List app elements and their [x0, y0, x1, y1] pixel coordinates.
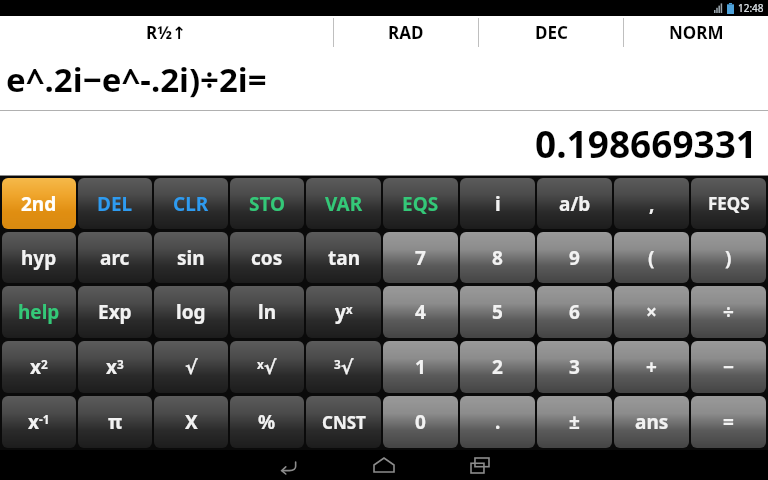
staticText: ln — [258, 299, 277, 325]
button[interactable]: 3 — [537, 341, 612, 393]
staticText: DEL — [97, 191, 133, 217]
button[interactable]: i — [460, 178, 535, 229]
staticText: tan — [328, 245, 360, 271]
staticText: . — [495, 409, 501, 435]
button[interactable]: . — [460, 396, 535, 448]
staticText: % — [258, 409, 276, 435]
button[interactable]: + — [614, 341, 689, 393]
button[interactable]: VAR — [306, 178, 381, 229]
button[interactable]: Home — [367, 450, 401, 480]
button[interactable]: ÷ — [691, 286, 766, 338]
button[interactable]: , — [614, 178, 689, 229]
button[interactable]: FEQS — [691, 178, 766, 229]
staticText: ± — [569, 409, 580, 435]
button[interactable]: log — [154, 286, 228, 338]
staticText: DEC — [535, 21, 568, 44]
button[interactable]: DEC — [479, 16, 623, 49]
button[interactable]: 4 — [383, 286, 458, 338]
button[interactable]: sin — [154, 232, 228, 283]
staticText: ÷ — [723, 299, 734, 325]
button[interactable]: hyp — [2, 232, 76, 283]
staticText: ) — [725, 245, 732, 271]
button[interactable]: 3√ — [306, 341, 381, 393]
staticText: = — [723, 409, 734, 435]
button[interactable]: x√ — [230, 341, 304, 393]
button[interactable]: Recent apps — [463, 450, 497, 480]
button[interactable]: X — [154, 396, 228, 448]
staticText: 2 — [492, 354, 503, 380]
button[interactable]: 8 — [460, 232, 535, 283]
button[interactable]: Exp — [78, 286, 152, 338]
button[interactable]: π — [78, 396, 152, 448]
button[interactable]: tan — [306, 232, 381, 283]
staticText: FEQS — [708, 192, 750, 215]
button[interactable]: cos — [230, 232, 304, 283]
staticText: VAR — [325, 191, 363, 217]
button[interactable]: 6 — [537, 286, 612, 338]
button[interactable]: × — [614, 286, 689, 338]
button[interactable]: R½↑ — [0, 16, 333, 49]
staticText: R½↑ — [146, 21, 187, 44]
button[interactable]: STO — [230, 178, 304, 229]
staticText: hyp — [21, 245, 57, 271]
button[interactable]: ans — [614, 396, 689, 448]
button[interactable]: √ — [154, 341, 228, 393]
staticText: 2nd — [21, 191, 57, 217]
button[interactable]: a/b — [537, 178, 612, 229]
button[interactable]: 9 — [537, 232, 612, 283]
button[interactable]: 2 — [460, 341, 535, 393]
button[interactable]: 0 — [383, 396, 458, 448]
staticText: 3√ — [334, 356, 354, 379]
staticText: 4 — [415, 299, 426, 325]
staticText: cos — [251, 245, 283, 271]
staticText: arc — [100, 245, 130, 271]
staticText: RAD — [388, 21, 424, 44]
staticText: STO — [249, 191, 286, 217]
button[interactable]: ) — [691, 232, 766, 283]
staticText: 1 — [415, 354, 426, 380]
button[interactable]: x-1 — [2, 396, 76, 448]
button[interactable]: ± — [537, 396, 612, 448]
button[interactable]: − — [691, 341, 766, 393]
button[interactable]: arc — [78, 232, 152, 283]
staticText: x3 — [106, 354, 124, 380]
staticText: 8 — [492, 245, 503, 271]
staticText: 9 — [569, 245, 580, 271]
button[interactable]: EQS — [383, 178, 458, 229]
button[interactable]: help — [2, 286, 76, 338]
button[interactable]: Back — [271, 450, 305, 480]
button[interactable]: CNST — [306, 396, 381, 448]
staticText: a/b — [559, 191, 591, 217]
staticText: e^.2i−e^-.2i)÷2i= — [6, 57, 267, 102]
button[interactable]: DEL — [78, 178, 152, 229]
button[interactable]: RAD — [334, 16, 478, 49]
staticText: x-1 — [28, 409, 50, 435]
button[interactable]: = — [691, 396, 766, 448]
button[interactable]: 7 — [383, 232, 458, 283]
button[interactable]: ( — [614, 232, 689, 283]
staticText: , — [649, 191, 655, 217]
staticText: CLR — [173, 191, 209, 217]
staticText: 0 — [415, 409, 426, 435]
staticText: + — [646, 354, 657, 380]
button[interactable]: ln — [230, 286, 304, 338]
button[interactable]: CLR — [154, 178, 228, 229]
button[interactable]: 5 — [460, 286, 535, 338]
staticText: × — [646, 299, 657, 325]
button[interactable]: % — [230, 396, 304, 448]
staticText: 3 — [569, 354, 580, 380]
staticText: 12:48 — [738, 1, 764, 15]
staticText: CNST — [322, 411, 366, 434]
button[interactable]: yx — [306, 286, 381, 338]
staticText: x√ — [257, 356, 277, 379]
staticText: π — [108, 409, 123, 435]
button[interactable]: x3 — [78, 341, 152, 393]
staticText: log — [176, 299, 206, 325]
staticText: X — [185, 409, 198, 435]
staticText: 6 — [569, 299, 580, 325]
button[interactable]: NORM — [624, 16, 768, 49]
button[interactable]: 2nd — [2, 178, 76, 229]
button[interactable]: 1 — [383, 341, 458, 393]
staticText: ( — [648, 245, 655, 271]
button[interactable]: x2 — [2, 341, 76, 393]
